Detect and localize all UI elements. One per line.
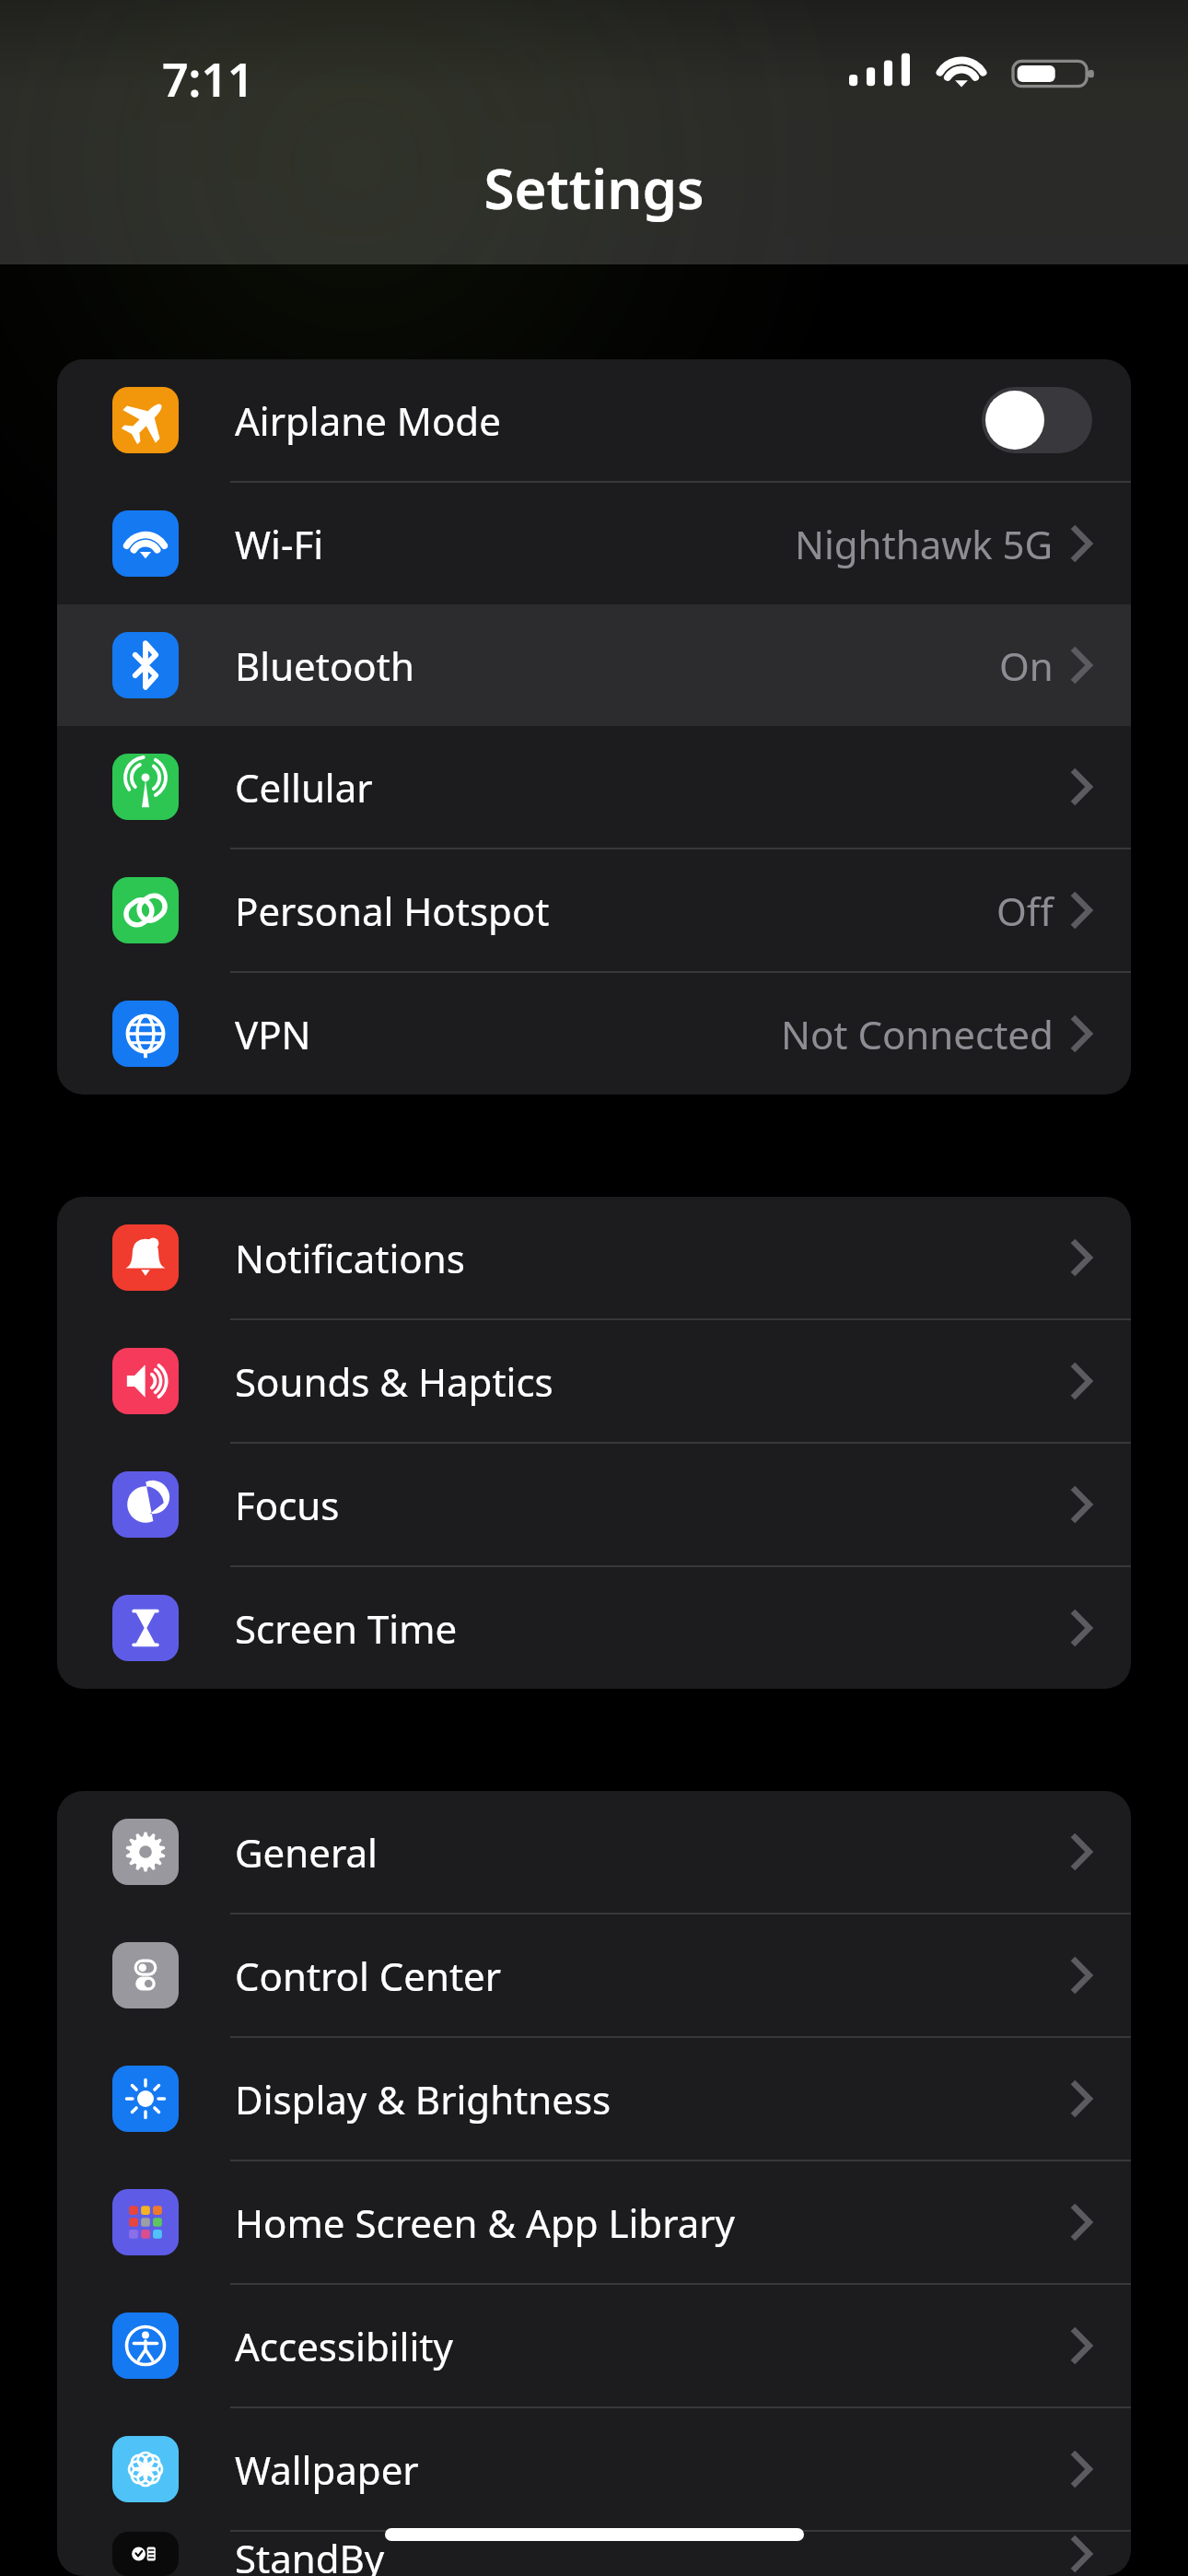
button[interactable]: Control Center xyxy=(57,1914,1131,2038)
button[interactable]: Airplane Mode xyxy=(57,359,1131,483)
staticText: 7:11 xyxy=(162,48,254,111)
staticText: Screen Time xyxy=(235,1602,1072,1655)
button[interactable]: Wallpaper xyxy=(57,2408,1131,2532)
staticText: Nighthawk 5G xyxy=(795,518,1054,570)
button[interactable]: VPN xyxy=(57,973,1131,1095)
button[interactable]: General xyxy=(57,1791,1131,1914)
staticText: Not Connected xyxy=(781,1008,1054,1060)
staticText: Airplane Mode xyxy=(235,394,982,447)
staticText: Notifications xyxy=(235,1232,1072,1284)
staticText: On xyxy=(999,639,1054,692)
button[interactable]: Cellular xyxy=(57,726,1131,849)
staticText: Display & Brightness xyxy=(235,2073,1072,2125)
button[interactable]: Bluetooth xyxy=(57,604,1131,726)
button[interactable]: Wi-Fi xyxy=(57,483,1131,604)
staticText: StandBy xyxy=(235,2532,1072,2576)
staticText: Focus xyxy=(235,1479,1072,1531)
staticText: Wi-Fi xyxy=(235,518,795,570)
staticText: Sounds & Haptics xyxy=(235,1355,1072,1408)
button[interactable]: Notifications xyxy=(57,1197,1131,1320)
staticText: Accessibility xyxy=(235,2320,1072,2372)
staticText: Off xyxy=(996,884,1054,937)
button[interactable]: Screen Time xyxy=(57,1567,1131,1689)
staticText: Settings xyxy=(483,150,705,226)
button[interactable]: Display & Brightness xyxy=(57,2038,1131,2161)
button[interactable]: Personal Hotspot xyxy=(57,849,1131,973)
staticText: Personal Hotspot xyxy=(235,884,996,937)
staticText: VPN xyxy=(235,1008,781,1060)
staticText: Wallpaper xyxy=(235,2443,1072,2496)
staticText: Control Center xyxy=(235,1950,1072,2002)
staticText: Home Screen & App Library xyxy=(235,2196,1072,2249)
button[interactable]: StandBy xyxy=(57,2532,1131,2576)
staticText: Bluetooth xyxy=(235,639,999,692)
staticText: General xyxy=(235,1826,1072,1879)
button[interactable]: Home Screen & App Library xyxy=(57,2161,1131,2285)
button[interactable]: Accessibility xyxy=(57,2285,1131,2408)
button[interactable]: Airplane Mode toggle xyxy=(982,387,1092,453)
staticText: Cellular xyxy=(235,761,1072,814)
button[interactable]: Sounds & Haptics xyxy=(57,1320,1131,1444)
button[interactable]: Focus xyxy=(57,1444,1131,1567)
